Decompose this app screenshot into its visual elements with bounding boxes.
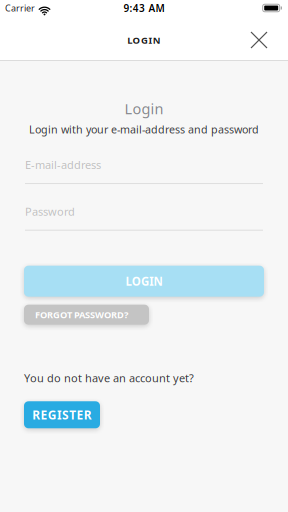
staticText: Carrier bbox=[5, 2, 35, 14]
staticText: LOGIN bbox=[126, 273, 162, 289]
button[interactable]: FORGOT PASSWORD? bbox=[24, 305, 149, 325]
button[interactable]: REGISTER bbox=[24, 401, 100, 428]
staticText: Login with your e-mail-address and passw… bbox=[29, 122, 259, 136]
staticText: E-mail-address bbox=[25, 157, 101, 172]
staticText: Login bbox=[124, 99, 163, 118]
button[interactable]: Close bbox=[251, 32, 288, 48]
staticText: You do not have an account yet? bbox=[24, 371, 194, 385]
staticText: REGISTER bbox=[32, 407, 92, 423]
button[interactable]: Password bbox=[25, 204, 263, 231]
button[interactable]: E-mail-address bbox=[25, 157, 263, 184]
staticText: FORGOT PASSWORD? bbox=[35, 308, 128, 321]
staticText: LOGIN bbox=[127, 34, 161, 46]
staticText: Password bbox=[25, 204, 75, 219]
button[interactable]: LOGIN bbox=[24, 266, 264, 297]
staticText: 9:43 AM bbox=[123, 1, 165, 15]
